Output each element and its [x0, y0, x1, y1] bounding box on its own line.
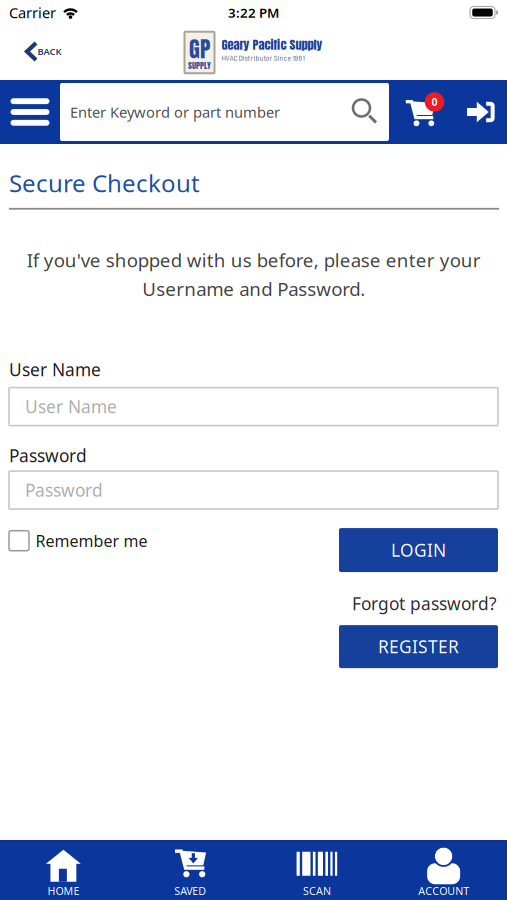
staticText: Remember me — [35, 530, 147, 551]
staticText: BACK — [37, 45, 61, 58]
staticText: HVAC Distributor Since 1961 — [221, 54, 304, 62]
button[interactable]: User Name — [9, 388, 498, 426]
button[interactable]: HOME — [0, 841, 127, 900]
button[interactable]: Back — [0, 46, 61, 63]
button[interactable]: Login — [339, 528, 498, 572]
staticText: LOGIN — [391, 539, 446, 562]
button[interactable]: SCAN — [253, 841, 380, 900]
staticText: HOME — [47, 884, 79, 898]
staticText: Enter Keyword or part number — [70, 102, 280, 122]
staticText: SUPPLY — [188, 59, 211, 72]
staticText: User Name — [25, 395, 117, 418]
button[interactable]: Register — [339, 625, 498, 668]
staticText: GP — [189, 32, 210, 65]
button[interactable]: Sign in — [455, 80, 507, 144]
button[interactable]: Menu — [0, 80, 60, 144]
staticText: SCAN — [303, 884, 331, 898]
staticText: 3:22 PM — [228, 4, 279, 21]
button[interactable]: Password — [9, 471, 498, 509]
staticText: User Name — [9, 358, 101, 381]
staticText: Password — [9, 444, 87, 467]
staticText: Geary Pacific Supply — [221, 35, 322, 54]
staticText: ACCOUNT — [418, 884, 469, 898]
staticText: Secure Checkout — [9, 167, 200, 199]
staticText: SAVED — [174, 884, 206, 898]
button[interactable]: ACCOUNT — [380, 841, 507, 900]
button[interactable]: Search — [60, 83, 389, 141]
staticText: REGISTER — [378, 635, 459, 658]
staticText: 0 — [431, 95, 437, 109]
staticText: Forgot password? — [352, 592, 497, 615]
button[interactable]: Remember me — [0, 528, 147, 551]
staticText: Password — [25, 479, 103, 502]
button[interactable]: Cart — [389, 80, 455, 144]
staticText: Carrier — [9, 3, 56, 22]
staticText: If you've shopped with us before, please… — [26, 248, 480, 301]
button[interactable]: Forgot password — [352, 592, 497, 615]
button[interactable]: SAVED — [127, 841, 254, 900]
